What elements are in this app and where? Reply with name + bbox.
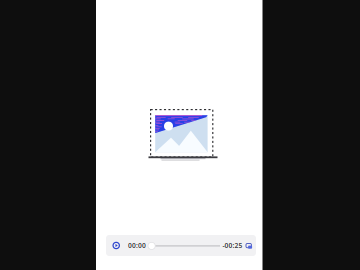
button[interactable]: Play [108,235,124,256]
staticText: 00:00 [128,241,146,250]
button[interactable]: Picture in Picture [244,235,253,256]
staticText: -00:25 [222,241,242,250]
